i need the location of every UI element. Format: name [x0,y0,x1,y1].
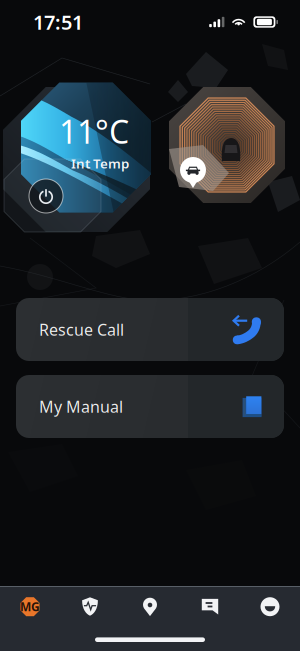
staticText: 17:51 [33,9,83,35]
button[interactable]: Health [60,592,120,622]
staticText: Int Temp [71,154,129,172]
staticText: MG [20,599,40,615]
button[interactable]: Locate [120,592,180,622]
button[interactable]: Messages [180,592,240,622]
button[interactable]: Power [25,175,67,217]
button[interactable]: My Manual [16,375,284,438]
button[interactable]: Account [240,592,300,622]
button[interactable]: Rescue Call [16,298,284,361]
staticText: My Manual [39,396,123,417]
button[interactable]: Home [0,592,60,622]
staticText: 11°C [59,110,129,152]
staticText: Rescue Call [39,319,124,340]
